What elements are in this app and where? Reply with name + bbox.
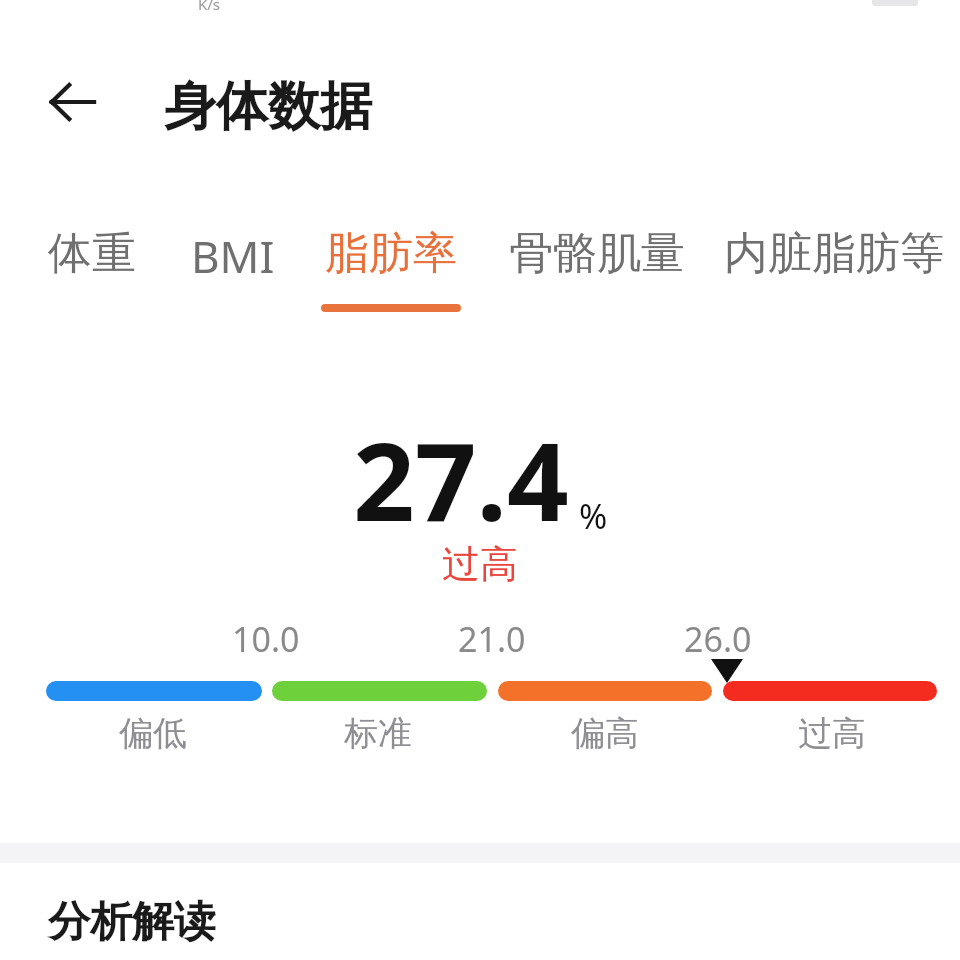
- staticText: BMI: [191, 226, 275, 286]
- staticText: 21.0: [458, 616, 526, 662]
- button[interactable]: 体重: [34, 226, 150, 312]
- staticText: 过高: [798, 712, 866, 755]
- staticText: 26.0: [684, 616, 752, 662]
- button[interactable]: Back: [36, 66, 108, 138]
- staticText: 过高: [0, 540, 960, 588]
- staticText: 脂肪率: [325, 226, 457, 281]
- staticText: 身体数据: [164, 74, 372, 140]
- staticText: K/s: [198, 0, 221, 14]
- staticText: 内脏脂肪等: [724, 226, 944, 281]
- staticText: 10.0: [232, 616, 300, 662]
- button[interactable]: 脂肪率: [312, 226, 470, 320]
- button[interactable]: BMI: [178, 226, 288, 312]
- staticText: 偏高: [571, 712, 639, 755]
- staticText: 体重: [48, 226, 136, 281]
- button[interactable]: 内脏脂肪等: [724, 226, 960, 312]
- staticText: 27.4: [353, 406, 569, 553]
- staticText: %: [579, 493, 608, 539]
- staticText: 骨骼肌量: [509, 226, 685, 281]
- button[interactable]: 骨骼肌量: [496, 226, 698, 312]
- staticText: 标准: [344, 712, 412, 755]
- staticText: 偏低: [119, 712, 187, 755]
- staticText: 分析解读: [48, 896, 216, 949]
